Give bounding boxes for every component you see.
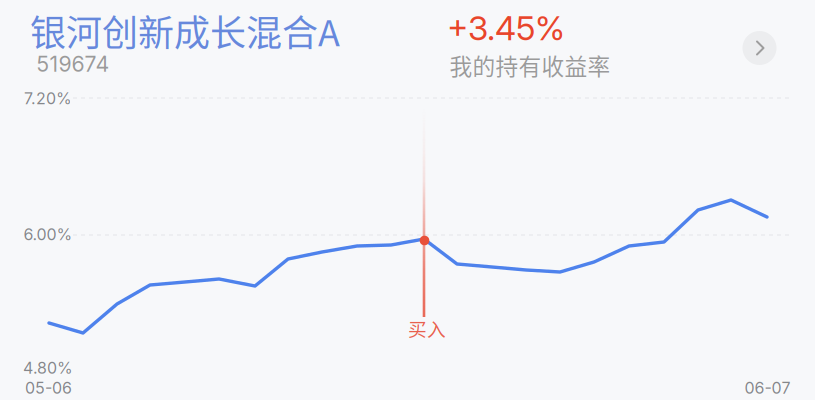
staticText: 519674 xyxy=(36,51,109,77)
staticText: 06-07 xyxy=(744,378,790,398)
staticText: 我的持有收益率 xyxy=(449,49,610,81)
staticText: 7.20% xyxy=(24,89,72,108)
staticText: 4.80% xyxy=(23,358,73,378)
staticText: 05-06 xyxy=(25,378,72,398)
staticText: +3.45% xyxy=(447,8,565,48)
staticText: 6.00% xyxy=(23,225,72,244)
staticText: 银河创新成长混合A xyxy=(30,4,340,56)
staticText: 买入 xyxy=(408,314,446,341)
button[interactable]: Open fund details xyxy=(737,26,781,70)
